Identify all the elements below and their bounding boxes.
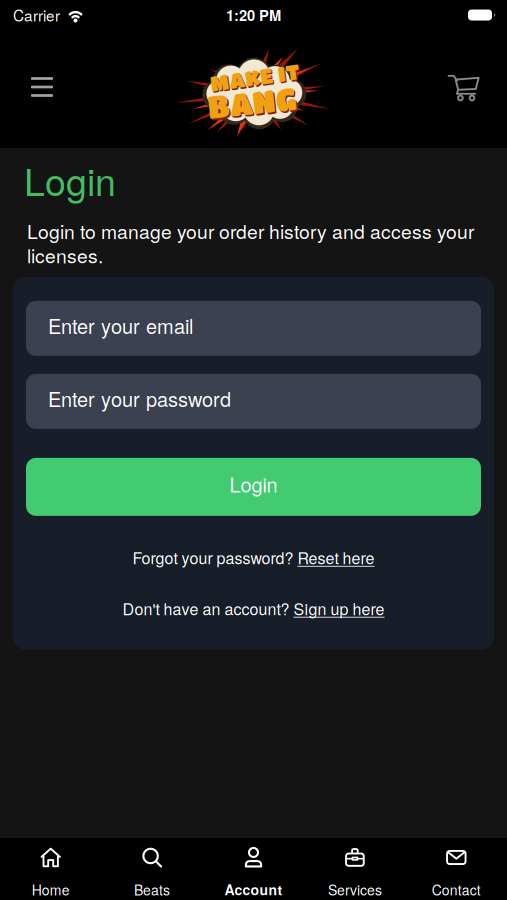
staticText: MAKE IT: [211, 66, 301, 91]
staticText: Enter your email: [48, 311, 193, 340]
button[interactable]: Reset here: [297, 546, 374, 569]
button[interactable]: Home: [0, 845, 101, 899]
button[interactable]: Make It Bang home: [192, 46, 316, 140]
staticText: Services: [328, 879, 382, 899]
staticText: Beats: [134, 879, 170, 899]
button[interactable]: Cart: [442, 65, 486, 109]
staticText: MAKE IT: [210, 65, 300, 89]
staticText: Forgot your password?: [132, 546, 297, 569]
staticText: Login to manage your order history and a…: [27, 219, 474, 267]
button[interactable]: Account: [203, 845, 304, 899]
button[interactable]: Sign up here: [293, 597, 384, 620]
staticText: Contact: [432, 879, 481, 899]
staticText: Enter your password: [48, 384, 231, 413]
staticText: Login: [24, 153, 116, 207]
staticText: Home: [32, 879, 70, 899]
button[interactable]: Login: [26, 458, 481, 516]
staticText: Don't have an account?: [122, 597, 293, 620]
button[interactable]: Services: [304, 845, 406, 899]
staticText: BANG: [207, 84, 296, 120]
staticText: Sign up here: [293, 597, 384, 620]
button[interactable]: Beats: [101, 845, 203, 899]
staticText: 1:20 PM: [226, 4, 281, 26]
button[interactable]: Enter your password: [26, 374, 481, 429]
staticText: Carrier: [13, 4, 60, 26]
staticText: Login: [229, 470, 277, 498]
button[interactable]: Contact: [406, 845, 507, 899]
staticText: Reset here: [297, 546, 374, 569]
staticText: BANG: [209, 86, 298, 122]
button[interactable]: Menu: [20, 65, 64, 109]
staticText: Account: [224, 879, 282, 899]
button[interactable]: Enter your email: [26, 301, 481, 356]
